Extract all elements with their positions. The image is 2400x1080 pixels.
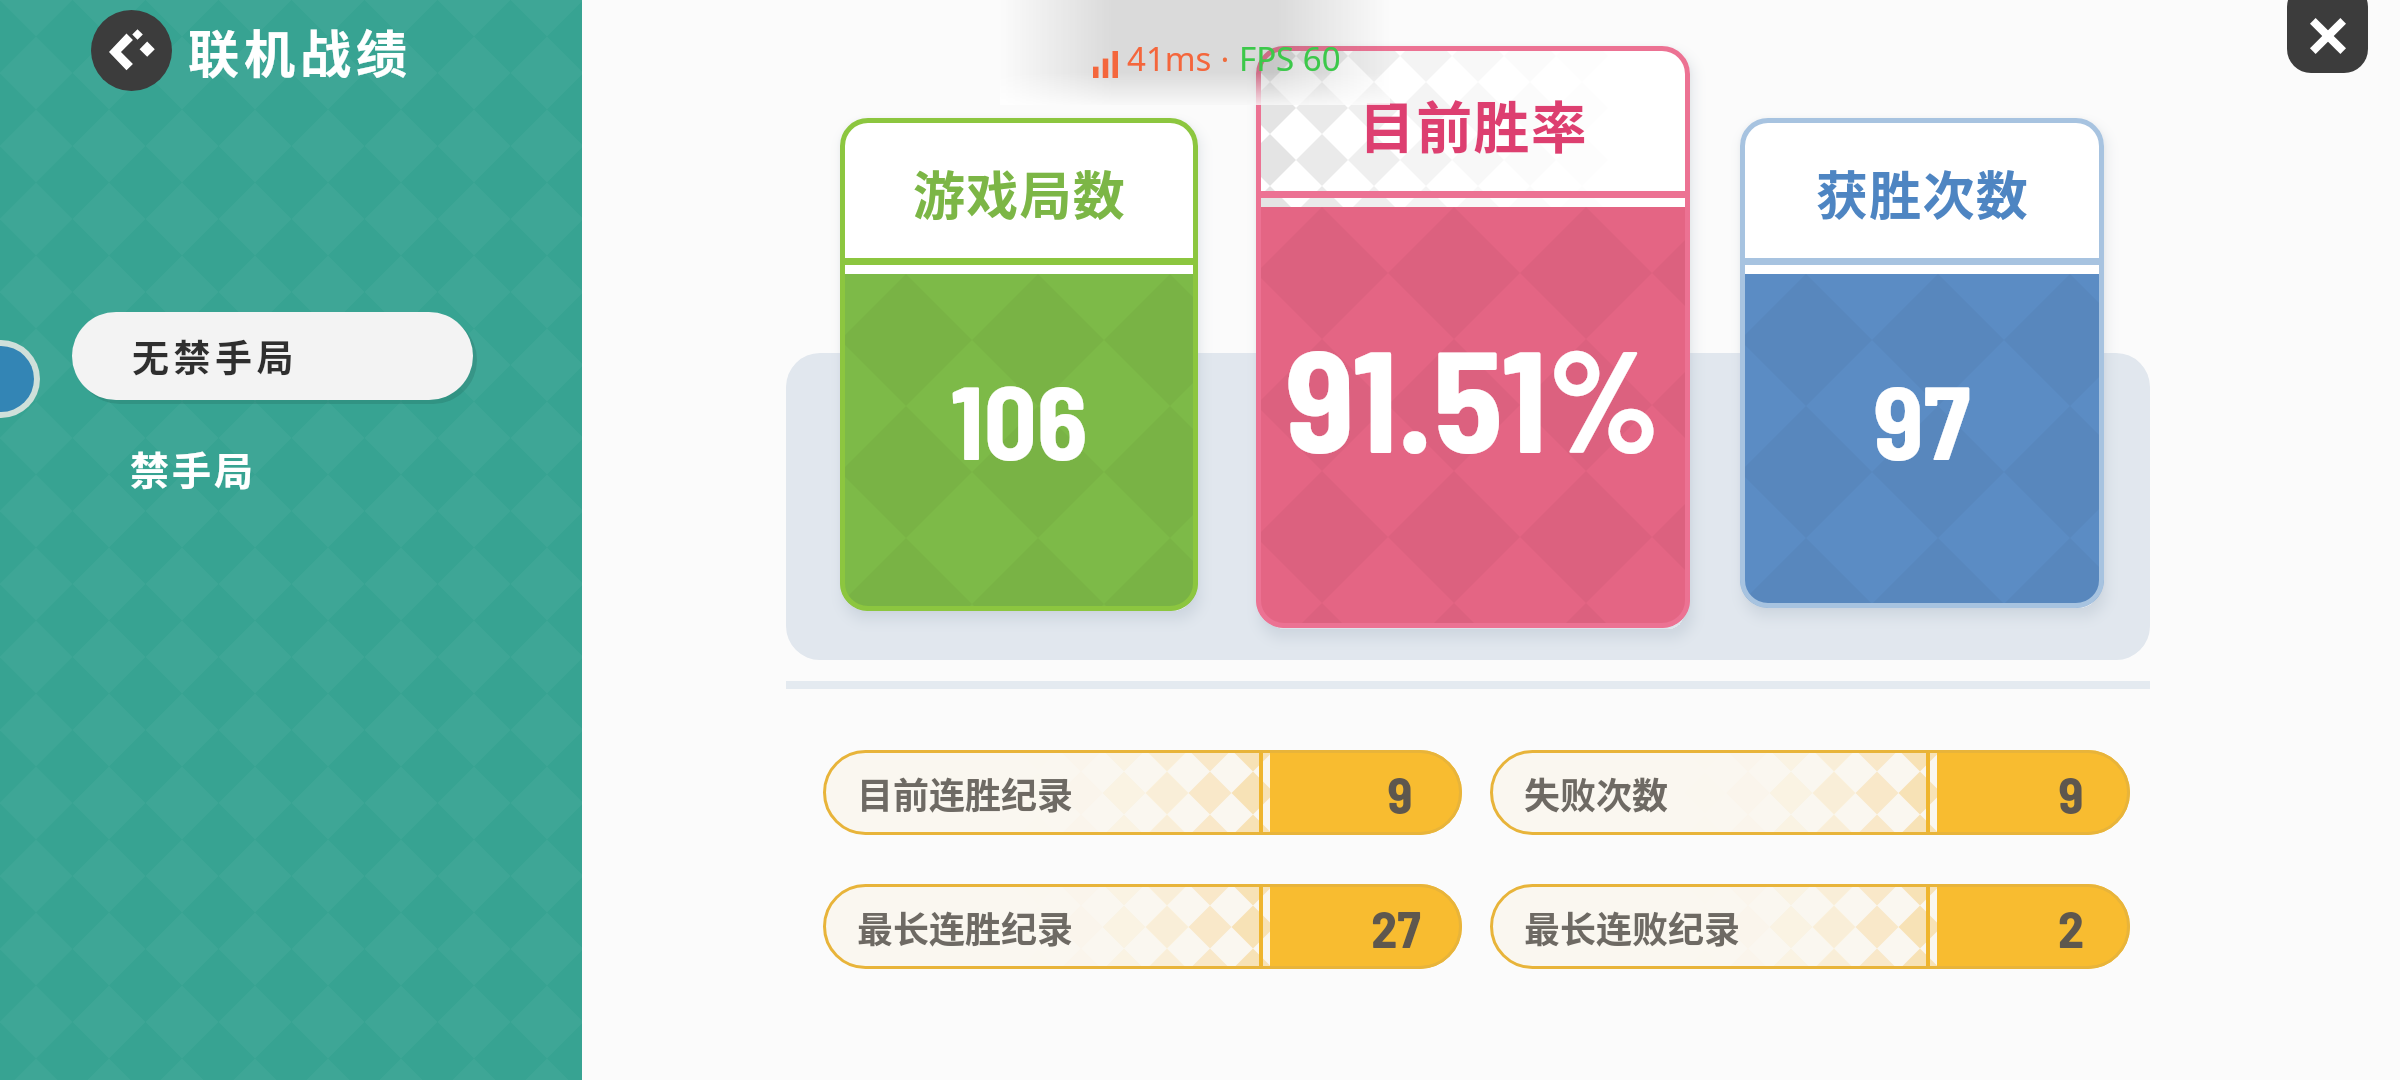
staticText: 2	[2058, 896, 2084, 958]
staticText: 9	[2058, 762, 2084, 824]
staticText: 9	[1387, 762, 1413, 824]
button[interactable]: 目前胜率	[1256, 46, 1690, 628]
staticText: 游戏局数	[913, 155, 1126, 230]
button[interactable]: 获胜次数	[1740, 118, 2104, 608]
staticText: 联机战绩	[188, 14, 413, 88]
button[interactable]: 游戏局数	[840, 118, 1198, 611]
button[interactable]: 最长连败纪录	[1490, 884, 2130, 969]
button[interactable]: 禁手局	[72, 424, 473, 512]
button[interactable]: Rank badge	[0, 340, 40, 418]
staticText: 97	[1873, 356, 1971, 481]
staticText: 91.51%	[1285, 310, 1661, 482]
staticText: 最长连败纪录	[1524, 901, 1741, 953]
staticText: 获胜次数	[1816, 155, 2029, 230]
staticText: 最长连胜纪录	[857, 901, 1074, 953]
button[interactable]: 失败次数	[1490, 750, 2130, 835]
staticText: 106	[950, 356, 1088, 481]
staticText: 无禁手局	[132, 329, 298, 383]
button[interactable]: 最长连胜纪录	[823, 884, 1462, 969]
staticText: ·	[1212, 36, 1239, 81]
button[interactable]: 目前连胜纪录	[823, 750, 1462, 835]
staticText: 禁手局	[130, 440, 257, 496]
staticText: 目前胜率	[1359, 83, 1588, 164]
staticText: FPS 60	[1239, 36, 1341, 81]
button[interactable]: Back	[91, 10, 172, 91]
staticText: 27	[1371, 896, 1421, 958]
staticText: 目前连胜纪录	[857, 767, 1074, 819]
staticText: 41ms	[1127, 36, 1212, 81]
button[interactable]: Close	[2287, 0, 2368, 73]
staticText: 失败次数	[1524, 767, 1669, 819]
button[interactable]: 无禁手局	[72, 312, 473, 400]
